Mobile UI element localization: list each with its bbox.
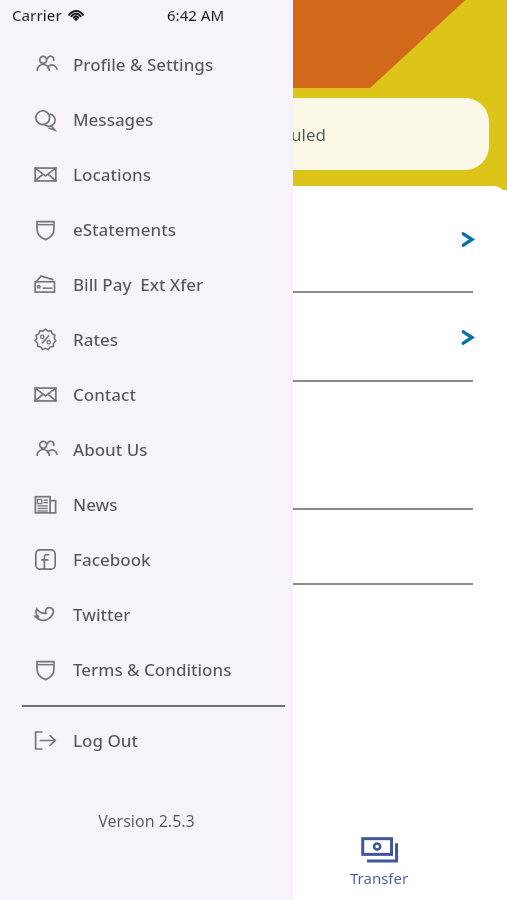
button[interactable] (0, 382, 507, 510)
button[interactable]: Terms & Conditions (0, 642, 293, 697)
button[interactable]: Log Out (0, 713, 293, 768)
staticText: Rates (73, 328, 118, 351)
staticText: Log Out (73, 729, 138, 752)
staticText: Messages (73, 108, 154, 131)
button[interactable]: About Us (0, 422, 293, 477)
staticText: About Us (73, 438, 148, 461)
staticText: eStatements (73, 218, 176, 241)
staticText: Version 2.5.3 (0, 810, 293, 832)
staticText: Facebook (73, 548, 151, 571)
other: Open details (460, 232, 475, 247)
button[interactable]: Messages (0, 92, 293, 147)
other: Open details (460, 330, 475, 345)
staticText: Contact (73, 383, 136, 406)
button[interactable]: Rates (0, 312, 293, 367)
button[interactable]: Facebook (0, 532, 293, 587)
button[interactable]: eStatements (0, 202, 293, 257)
button[interactable]: Locations (0, 147, 293, 202)
staticText: Terms & Conditions (73, 658, 232, 681)
button[interactable]: Bill Pay Ext Xfer (0, 257, 293, 312)
staticText: Bill Pay Ext Xfer (73, 273, 204, 296)
button[interactable]: Twitter (0, 587, 293, 642)
button[interactable]: Contact (0, 367, 293, 422)
button[interactable]: Open details (0, 293, 507, 382)
staticText: Carrier (12, 5, 62, 25)
button[interactable]: News (0, 477, 293, 532)
button[interactable] (0, 510, 507, 585)
button[interactable]: Open details (0, 186, 507, 293)
staticText: Profile & Settings (73, 53, 214, 76)
button[interactable]: Profile & Settings (0, 37, 293, 92)
staticText: Transfer (350, 868, 409, 888)
staticText: Twitter (73, 603, 131, 626)
staticText: News (73, 493, 118, 516)
staticText: Scheduled (243, 123, 326, 146)
staticText: 6:42 AM (167, 5, 225, 25)
button[interactable]: Transfer (340, 833, 419, 892)
staticText: Locations (73, 163, 151, 186)
